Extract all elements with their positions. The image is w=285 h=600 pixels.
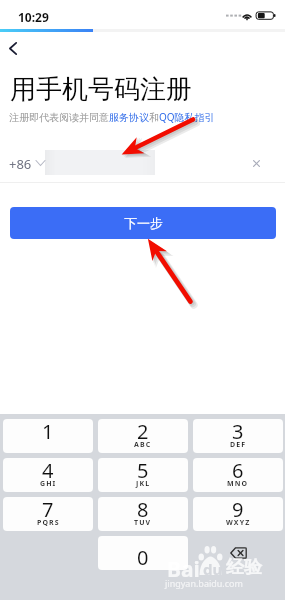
staticText: 2	[137, 419, 149, 445]
staticText: PQRS	[37, 518, 60, 528]
staticText: +86	[9, 155, 32, 171]
staticText: ABC	[134, 440, 152, 450]
staticText: 4	[42, 458, 54, 484]
staticText: DEF	[230, 440, 247, 450]
button[interactable]: 下一步	[10, 207, 276, 239]
button[interactable]: +86	[9, 155, 45, 171]
staticText: 1	[42, 419, 54, 445]
staticText: 注册即代表阅读并同意服务协议和QQ隐私指引	[9, 110, 215, 124]
staticText: 10:29	[18, 9, 49, 25]
button[interactable]: 8	[98, 497, 188, 531]
staticText: 0	[137, 544, 149, 570]
button[interactable]: Backspace	[193, 536, 283, 570]
staticText: WXYZ	[226, 518, 251, 528]
button[interactable]: Back	[0, 34, 26, 60]
staticText: Bai	[167, 555, 200, 584]
staticText: 6	[232, 458, 244, 484]
button[interactable]: 4	[3, 458, 93, 492]
button[interactable]: 1	[3, 419, 93, 453]
button[interactable]: 2	[98, 419, 188, 453]
button[interactable]: 5	[98, 458, 188, 492]
staticText: MNO	[227, 479, 249, 489]
button[interactable]: 0	[98, 536, 188, 570]
button[interactable]: Clear text	[247, 154, 265, 172]
staticText: 下一步	[124, 215, 163, 231]
staticText: 9	[232, 497, 244, 523]
staticText: 经验	[226, 556, 262, 579]
button[interactable]: 7	[3, 497, 93, 531]
staticText: du	[203, 559, 223, 579]
button[interactable]: 6	[193, 458, 283, 492]
staticText: 3	[232, 419, 244, 445]
staticText: 5	[137, 458, 149, 484]
staticText: 8	[137, 497, 149, 523]
staticText: GHI	[40, 479, 57, 489]
staticText: JKL	[136, 479, 151, 489]
staticText: 7	[42, 497, 54, 523]
button[interactable]: 3	[193, 419, 283, 453]
button[interactable]: 9	[193, 497, 283, 531]
staticText: jingyan.baidu.com	[165, 577, 243, 589]
staticText: 用手机号码注册	[10, 73, 192, 106]
staticText: TUV	[134, 518, 152, 528]
